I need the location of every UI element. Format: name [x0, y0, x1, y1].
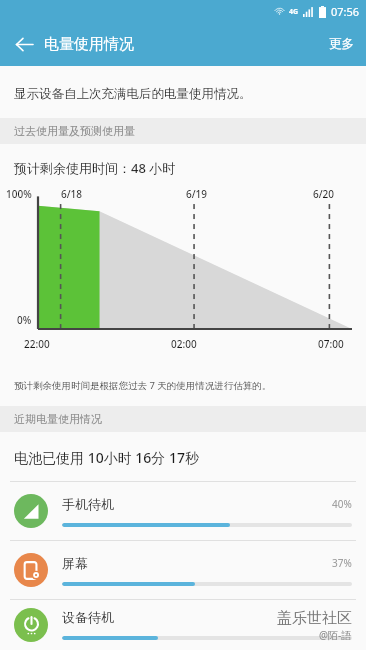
staticText: 22:00 — [24, 337, 50, 351]
staticText: 盖乐世社区 — [277, 609, 352, 628]
staticText: 6/18 — [61, 187, 83, 201]
staticText: 07:00 — [318, 337, 344, 351]
staticText: 显示设备自上次充满电后的电量使用情况。 — [14, 86, 252, 102]
staticText: 设备待机 — [62, 609, 114, 625]
staticText: 过去使用量及预测使用量 — [14, 124, 135, 138]
button[interactable]: 设备待机 — [0, 600, 366, 650]
staticText: 40% — [332, 497, 352, 511]
staticText: 手机待机 — [62, 496, 114, 512]
staticText: 07:56 — [331, 4, 360, 19]
staticText: 预计剩余使用时间是根据您过去 7 天的使用情况进行估算的。 — [14, 379, 272, 392]
staticText: 电池已使用 10小时 16分 17秒 — [14, 448, 199, 467]
button[interactable]: 手机待机 — [0, 482, 366, 540]
staticText: 电量使用情况 — [44, 35, 134, 54]
staticText: 6/19 — [186, 187, 208, 201]
staticText: 更多 — [329, 36, 354, 52]
staticText: 4G — [289, 7, 299, 17]
staticText: 预计剩余使用时间：48 小时 — [14, 159, 176, 177]
staticText: 02:00 — [171, 337, 197, 351]
button[interactable]: 屏幕 — [0, 541, 366, 599]
staticText: 屏幕 — [62, 555, 88, 571]
button[interactable]: 更多 — [317, 22, 366, 66]
staticText: 37% — [332, 556, 352, 570]
staticText: 100% — [6, 187, 32, 201]
staticText: @陌-語 — [319, 628, 352, 642]
staticText: 6/20 — [313, 187, 335, 201]
staticText: 近期电量使用情况 — [14, 412, 102, 426]
button[interactable]: Back — [6, 26, 42, 62]
staticText: 0% — [17, 313, 32, 327]
